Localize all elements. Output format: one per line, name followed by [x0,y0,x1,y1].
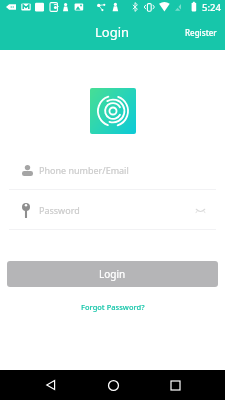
button[interactable]: Phone number/Email [0,150,225,190]
button[interactable]: Register [177,21,225,44]
staticText: Login [99,267,126,281]
staticText: Register [185,27,217,38]
button[interactable]: Home [97,370,129,400]
staticText: Login [95,23,130,41]
staticText: Phone number/Email [39,164,129,176]
button[interactable]: Forgot Password? [71,298,155,316]
button[interactable]: Show password [193,205,208,216]
button[interactable]: Back [35,370,67,400]
button[interactable]: Recents [159,370,191,400]
button[interactable]: Password [0,190,225,230]
staticText: Forgot Password? [81,302,145,312]
staticText: Password [39,204,80,216]
button[interactable]: Login [7,261,218,287]
staticText: 5:24 [202,1,221,14]
